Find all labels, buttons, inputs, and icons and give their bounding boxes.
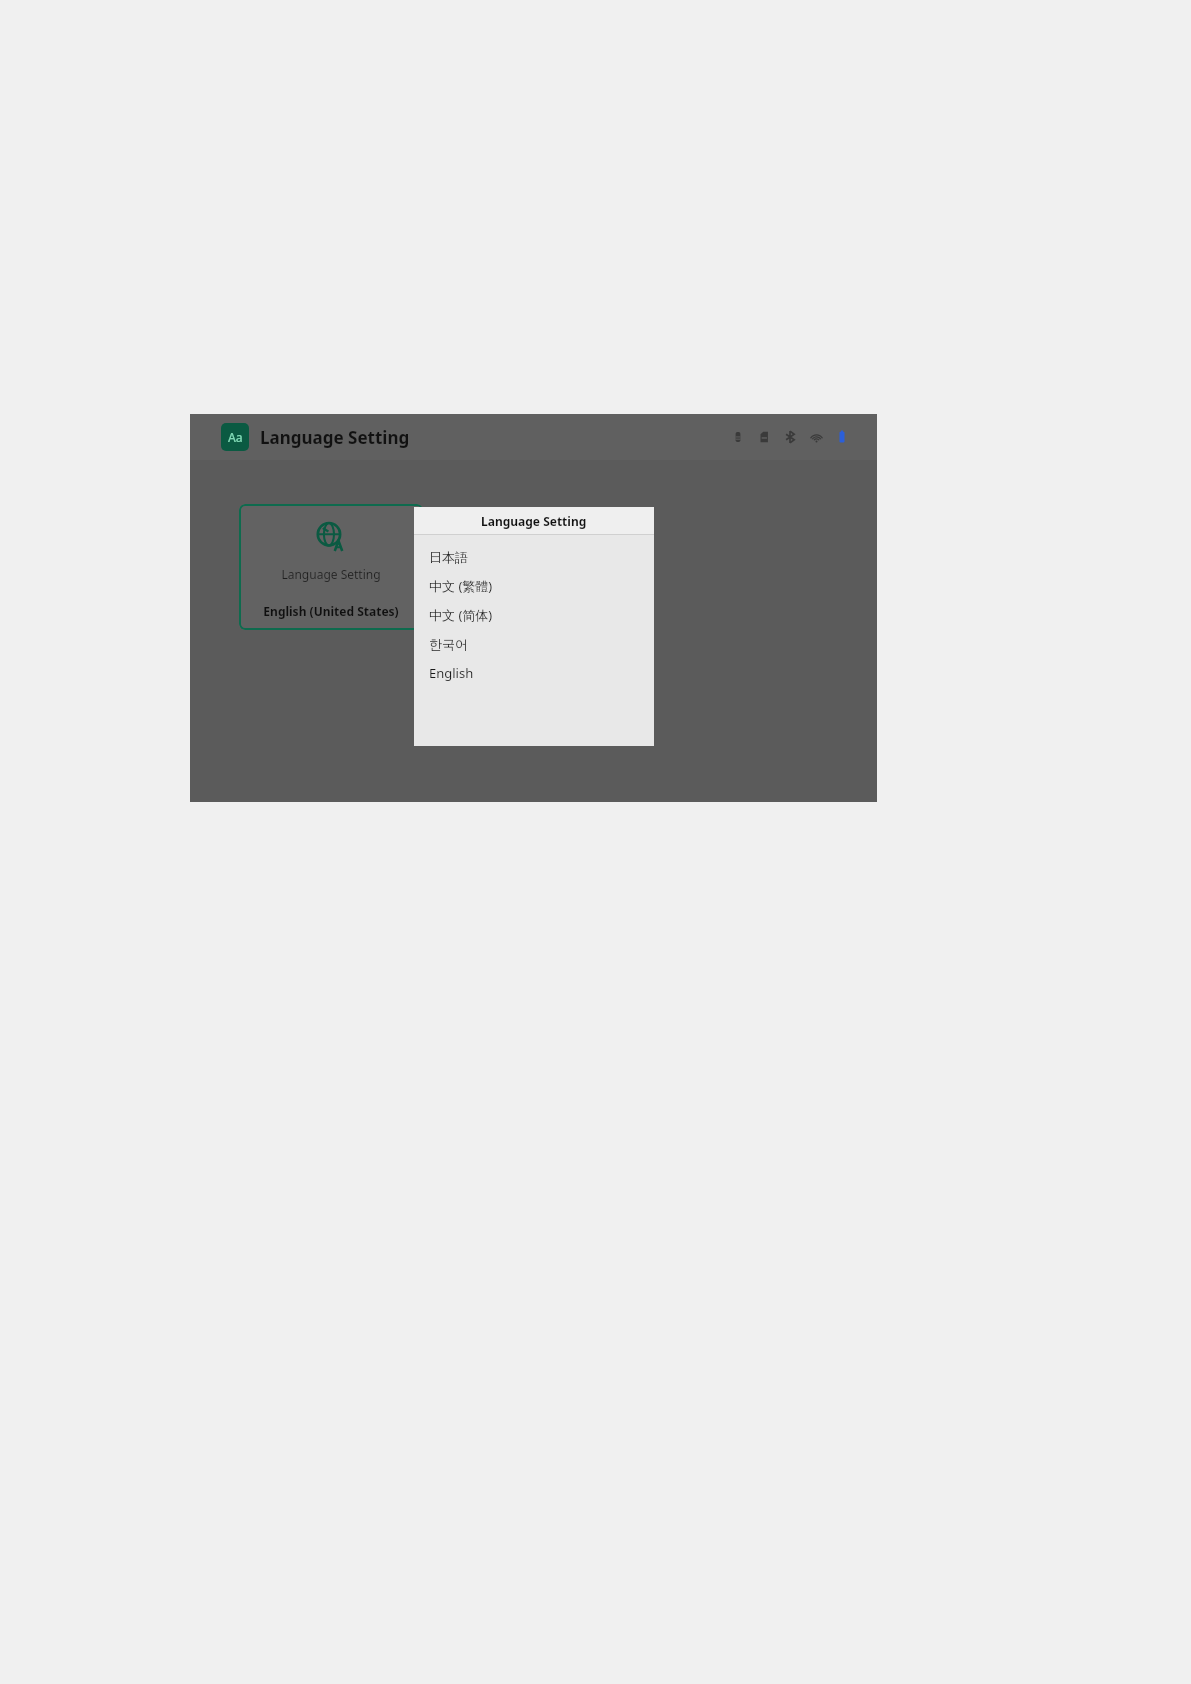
button[interactable]: 한국어 (414, 629, 654, 658)
button[interactable]: 中文 (繁體) (414, 571, 654, 600)
staticText: Language Setting (281, 566, 381, 582)
button[interactable]: 中文 (简体) (414, 600, 654, 629)
staticText: 中文 (简体) (429, 606, 493, 624)
other: Battery (833, 428, 851, 446)
button[interactable]: 日本語 (414, 542, 654, 571)
other: SD card (755, 428, 773, 446)
button[interactable]: Language Setting (239, 504, 423, 630)
staticText: Language Setting (481, 513, 587, 529)
button[interactable]: English (414, 658, 654, 687)
button[interactable]: App icon (221, 423, 249, 451)
staticText: Language Setting (260, 426, 410, 449)
staticText: 한국어 (429, 636, 468, 652)
other: USB (729, 428, 747, 446)
staticText: Aa (228, 429, 243, 445)
staticText: English (429, 664, 474, 682)
staticText: English (United States) (263, 603, 399, 619)
other: Wi-Fi (807, 428, 825, 446)
staticText: 日本語 (429, 549, 468, 565)
other: Bluetooth (781, 428, 799, 446)
staticText: 中文 (繁體) (429, 577, 493, 595)
